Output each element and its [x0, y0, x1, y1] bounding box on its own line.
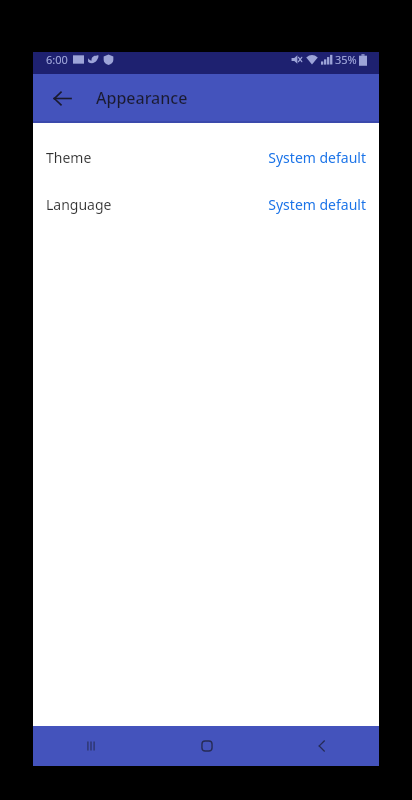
- button[interactable]: Language: [33, 181, 379, 228]
- staticText: 35%: [335, 52, 357, 67]
- staticText: Appearance: [96, 87, 188, 109]
- button[interactable]: Back: [264, 726, 379, 766]
- button[interactable]: Theme: [33, 134, 379, 181]
- staticText: 6:00: [46, 52, 68, 67]
- button[interactable]: Home: [149, 726, 264, 766]
- button[interactable]: Recent apps: [33, 726, 149, 766]
- staticText: Theme: [46, 148, 92, 167]
- button[interactable]: Back: [43, 79, 81, 117]
- staticText: System default: [268, 148, 366, 167]
- staticText: System default: [268, 195, 366, 214]
- staticText: Language: [46, 195, 112, 214]
